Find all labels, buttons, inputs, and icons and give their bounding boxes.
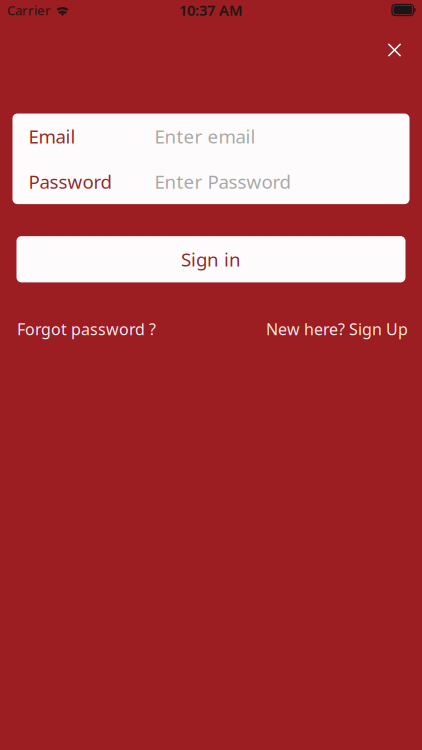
button[interactable]: Password <box>12 159 409 204</box>
staticText: New here? Sign Up <box>266 318 408 340</box>
button[interactable]: Sign in <box>16 236 405 282</box>
staticText: Enter email <box>154 124 255 149</box>
button[interactable]: New here? Sign Up <box>266 318 408 340</box>
button[interactable]: Email <box>12 113 409 159</box>
staticText: Enter Password <box>154 169 290 194</box>
staticText: Password <box>28 169 111 194</box>
staticText: Carrier <box>7 1 51 19</box>
staticText: Forgot password ? <box>17 318 156 340</box>
staticText: Email <box>28 124 75 149</box>
button[interactable]: Forgot password ? <box>17 318 156 340</box>
staticText: Sign in <box>181 247 241 272</box>
button[interactable]: Close <box>377 33 411 67</box>
staticText: 10:37 AM <box>179 0 243 20</box>
